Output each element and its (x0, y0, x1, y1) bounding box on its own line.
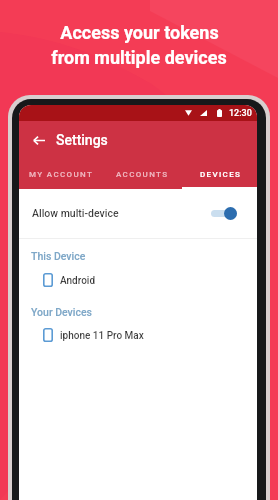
button[interactable]: iphone 11 Pro Max (19, 329, 257, 343)
staticText: Settings (56, 132, 108, 148)
staticText: DEVICES (200, 170, 242, 179)
staticText: Android (60, 275, 96, 287)
staticText: This Device (31, 250, 86, 262)
button[interactable]: Allow multi-device (19, 189, 257, 238)
staticText: ACCOUNTS (116, 170, 169, 179)
staticText: Your Devices (31, 306, 93, 318)
button[interactable]: ACCOUNTS (101, 159, 182, 189)
button[interactable]: Android (19, 274, 257, 288)
staticText: 12:30 (229, 108, 252, 119)
button[interactable]: Back (24, 125, 54, 155)
staticText: from multiple devices (51, 47, 227, 68)
staticText: iphone 11 Pro Max (60, 330, 144, 342)
button[interactable]: MY ACCOUNT (19, 159, 101, 189)
staticText: MY ACCOUNT (29, 170, 94, 179)
button[interactable]: DEVICES (182, 159, 257, 189)
staticText: Access your tokens (60, 22, 219, 43)
staticText: Allow multi-device (32, 207, 119, 219)
